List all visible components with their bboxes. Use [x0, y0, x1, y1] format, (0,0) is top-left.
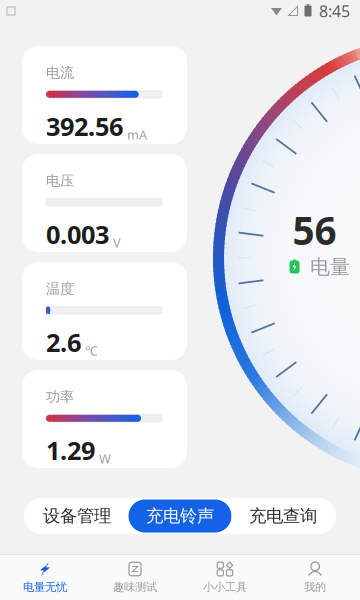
button[interactable]: 电量无忧	[0, 554, 90, 600]
button[interactable]: 趣味测试	[90, 554, 180, 600]
staticText: 8:45	[319, 0, 350, 22]
staticText: 趣味测试	[113, 580, 157, 594]
staticText: 我的	[304, 580, 326, 594]
staticText: W	[99, 450, 111, 467]
staticText: 0.003	[46, 217, 109, 251]
staticText: 充电铃声	[146, 505, 214, 527]
button[interactable]: 设备管理	[25, 499, 128, 532]
staticText: 电量	[310, 255, 350, 279]
button[interactable]: 小小工具	[180, 554, 270, 600]
staticText: ℃	[85, 342, 98, 359]
button[interactable]: 充电查询	[231, 499, 334, 532]
staticText: 电量无忧	[23, 580, 67, 594]
staticText: 电流	[46, 64, 74, 82]
staticText: 电压	[46, 172, 74, 190]
staticText: mA	[127, 126, 147, 143]
staticText: 1.29	[46, 433, 95, 467]
button[interactable]: 我的	[270, 554, 360, 600]
staticText: V	[113, 234, 121, 251]
staticText: 2.6	[46, 325, 81, 359]
staticText: 充电查询	[249, 505, 317, 527]
button[interactable]: 充电铃声	[128, 499, 231, 532]
staticText: 温度	[46, 280, 74, 298]
staticText: 功率	[46, 388, 74, 406]
staticText: 392.56	[46, 109, 123, 143]
staticText: 56	[292, 204, 336, 256]
staticText: 小小工具	[203, 580, 247, 594]
staticText: 设备管理	[43, 505, 111, 527]
